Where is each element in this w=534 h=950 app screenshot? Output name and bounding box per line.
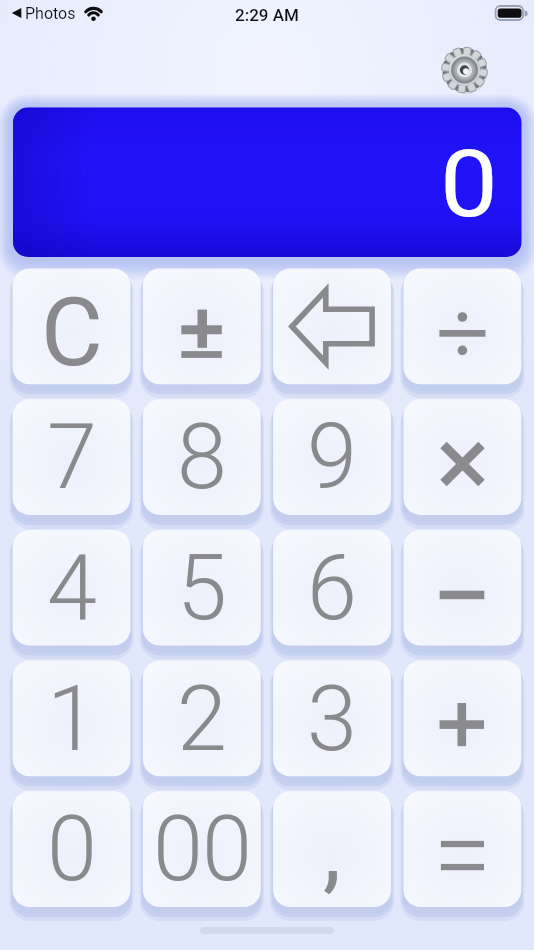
staticText: 3: [307, 667, 357, 772]
staticText: 9: [307, 405, 357, 510]
staticText: 00: [153, 797, 251, 902]
staticText: ,: [323, 796, 342, 904]
staticText: 2:29 AM: [235, 5, 299, 25]
staticText: 0: [440, 131, 498, 239]
staticText: 2: [177, 667, 227, 772]
staticText: 6: [307, 536, 357, 641]
staticText: C: [41, 277, 103, 388]
staticText: 7: [47, 405, 97, 510]
staticText: 4: [47, 536, 97, 641]
staticText: 0: [47, 797, 97, 902]
staticText: 5: [177, 536, 227, 641]
staticText: 1: [47, 667, 97, 772]
staticText: Photos: [25, 4, 76, 23]
staticText: 8: [177, 405, 227, 510]
